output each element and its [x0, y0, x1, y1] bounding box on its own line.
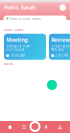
button[interactable]: Tasks	[17, 121, 31, 133]
staticText: With Alex	[51, 48, 63, 51]
button[interactable]: Profile	[53, 121, 67, 133]
staticText: NOTES	[4, 62, 12, 66]
button[interactable]: Alerts	[39, 121, 53, 133]
button[interactable]: Review	[49, 34, 70, 60]
staticText: Conf room A	[6, 48, 24, 51]
button[interactable]: Search your notes	[3, 15, 66, 21]
staticText: Hello, Sarah	[4, 4, 35, 11]
staticText: Search your notes	[10, 16, 41, 21]
staticText: Meeting	[6, 36, 27, 43]
staticText: 10:00 AM	[10, 54, 24, 57]
button[interactable]: Profile	[59, 4, 66, 11]
button[interactable]: Meeting	[4, 34, 46, 60]
button[interactable]: New note	[47, 80, 57, 90]
staticText: TODAY'S TASKS	[4, 28, 23, 31]
button[interactable]: Add	[31, 123, 38, 130]
staticText: Review	[51, 36, 70, 43]
staticText: Team sync at 10am	[6, 44, 29, 48]
staticText: 2:00 PM	[55, 54, 67, 57]
button[interactable]: Home	[3, 121, 17, 133]
staticText: Design specs	[51, 44, 69, 48]
